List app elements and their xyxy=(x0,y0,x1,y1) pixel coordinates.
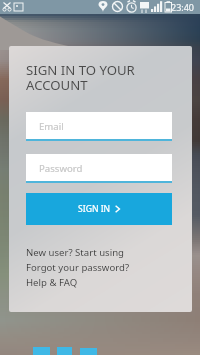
staticText: SIGN IN xyxy=(78,203,111,215)
staticText: Password xyxy=(39,162,83,175)
button[interactable]: Email xyxy=(26,112,172,141)
staticText: 23:40 xyxy=(171,1,195,13)
staticText: SIGN IN TO YOUR ACCOUNT xyxy=(26,61,135,94)
button[interactable]: Password xyxy=(26,154,172,183)
staticText: Email xyxy=(39,120,64,133)
button[interactable]: SIGN IN xyxy=(26,193,172,225)
button[interactable]: New user? Start using Forgot your passwo… xyxy=(26,246,130,289)
